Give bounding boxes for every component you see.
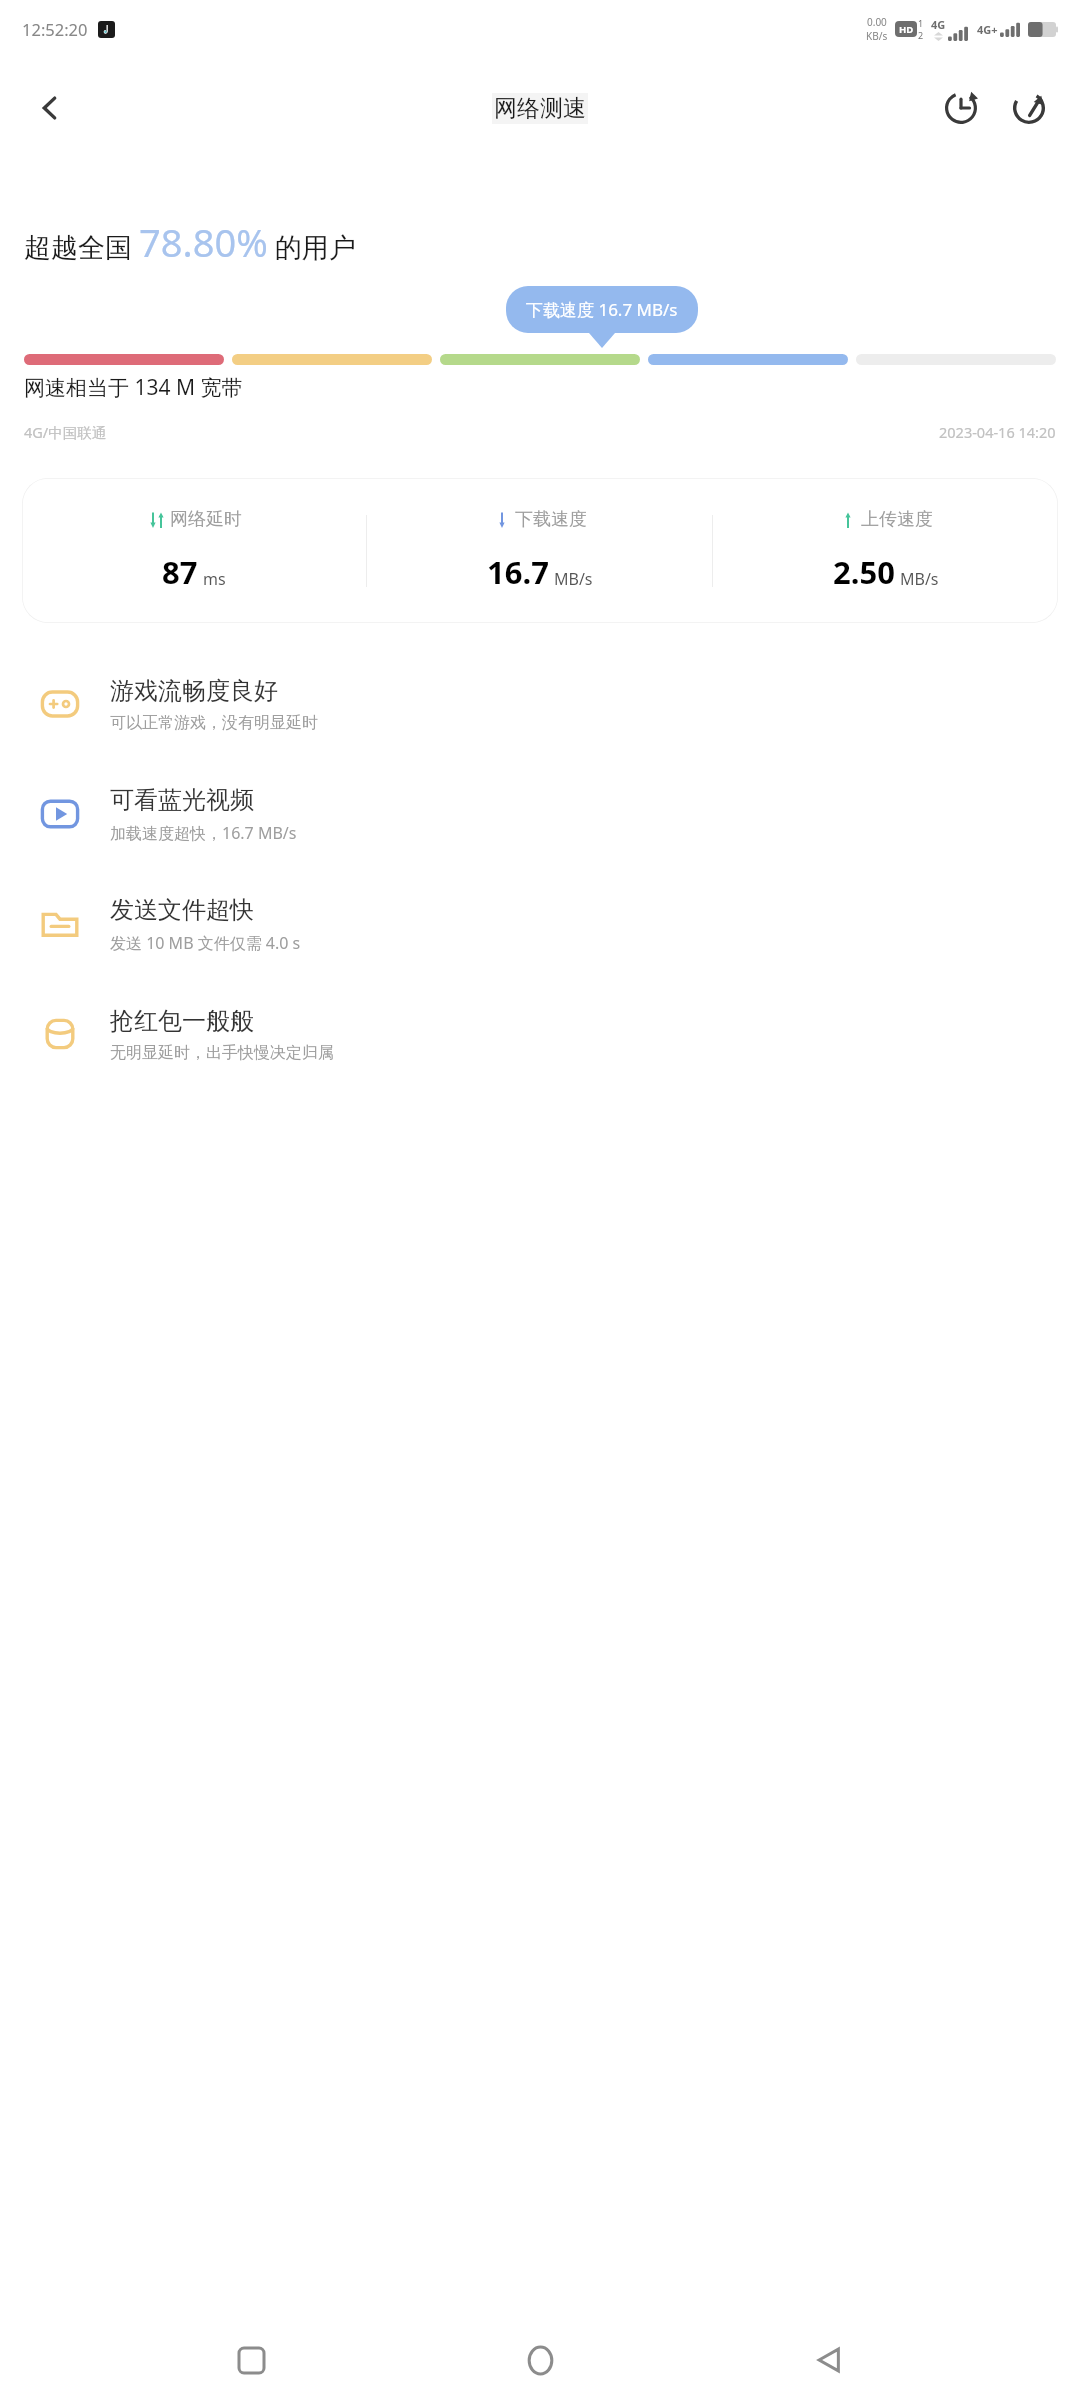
- button[interactable]: History: [932, 79, 990, 137]
- staticText: 2: [918, 29, 924, 41]
- staticText: 超越全国 78.80% 的用户: [24, 216, 356, 268]
- staticText: 4G+: [977, 22, 998, 37]
- staticText: 可以正常游戏，没有明显延时: [110, 713, 318, 733]
- staticText: 4G: [931, 17, 946, 32]
- staticText: 87: [162, 551, 198, 593]
- staticText: 4G/中国联通: [24, 422, 107, 442]
- button[interactable]: 游戏流畅度良好: [0, 649, 1080, 759]
- staticText: 加载速度超快，16.7 MB/s: [110, 822, 297, 844]
- staticText: 可看蓝光视频: [110, 785, 254, 815]
- staticText: 12:52:20: [22, 18, 88, 40]
- staticText: 游戏流畅度良好: [110, 676, 278, 706]
- staticText: 发送 10 MB 文件仅需 4.0 s: [110, 932, 301, 954]
- button[interactable]: 发送文件超快: [0, 869, 1080, 979]
- staticText: MB/s: [900, 568, 939, 590]
- staticText: 2023-04-16 14:20: [939, 422, 1056, 442]
- staticText: HD: [899, 23, 914, 36]
- staticText: 网速相当于 134 M 宽带: [24, 373, 243, 402]
- staticText: 上传速度: [861, 508, 933, 531]
- button[interactable]: Recents: [213, 2322, 289, 2398]
- staticText: 抢红包一般般: [110, 1006, 254, 1036]
- button[interactable]: Back: [791, 2322, 867, 2398]
- staticText: 网络测速: [494, 94, 586, 123]
- staticText: 无明显延时，出手快慢决定归属: [110, 1043, 334, 1063]
- button[interactable]: Refresh: [1000, 79, 1058, 137]
- staticText: 16.7: [487, 551, 549, 593]
- staticText: ms: [203, 568, 226, 590]
- staticText: 发送文件超快: [110, 895, 254, 925]
- staticText: MB/s: [554, 568, 593, 590]
- button[interactable]: Back: [24, 82, 76, 134]
- button[interactable]: 可看蓝光视频: [0, 759, 1080, 869]
- staticText: 2.50: [833, 551, 895, 593]
- button[interactable]: Home: [502, 2322, 578, 2398]
- staticText: KB/s: [866, 29, 888, 43]
- button[interactable]: 网络延时: [22, 478, 1058, 623]
- staticText: 0.00: [867, 15, 887, 29]
- staticText: 下载速度 16.7 MB/s: [526, 298, 678, 321]
- staticText: 1: [918, 17, 924, 29]
- staticText: 网络延时: [170, 508, 242, 531]
- button[interactable]: 抢红包一般般: [0, 979, 1080, 1089]
- staticText: 下载速度: [515, 508, 587, 531]
